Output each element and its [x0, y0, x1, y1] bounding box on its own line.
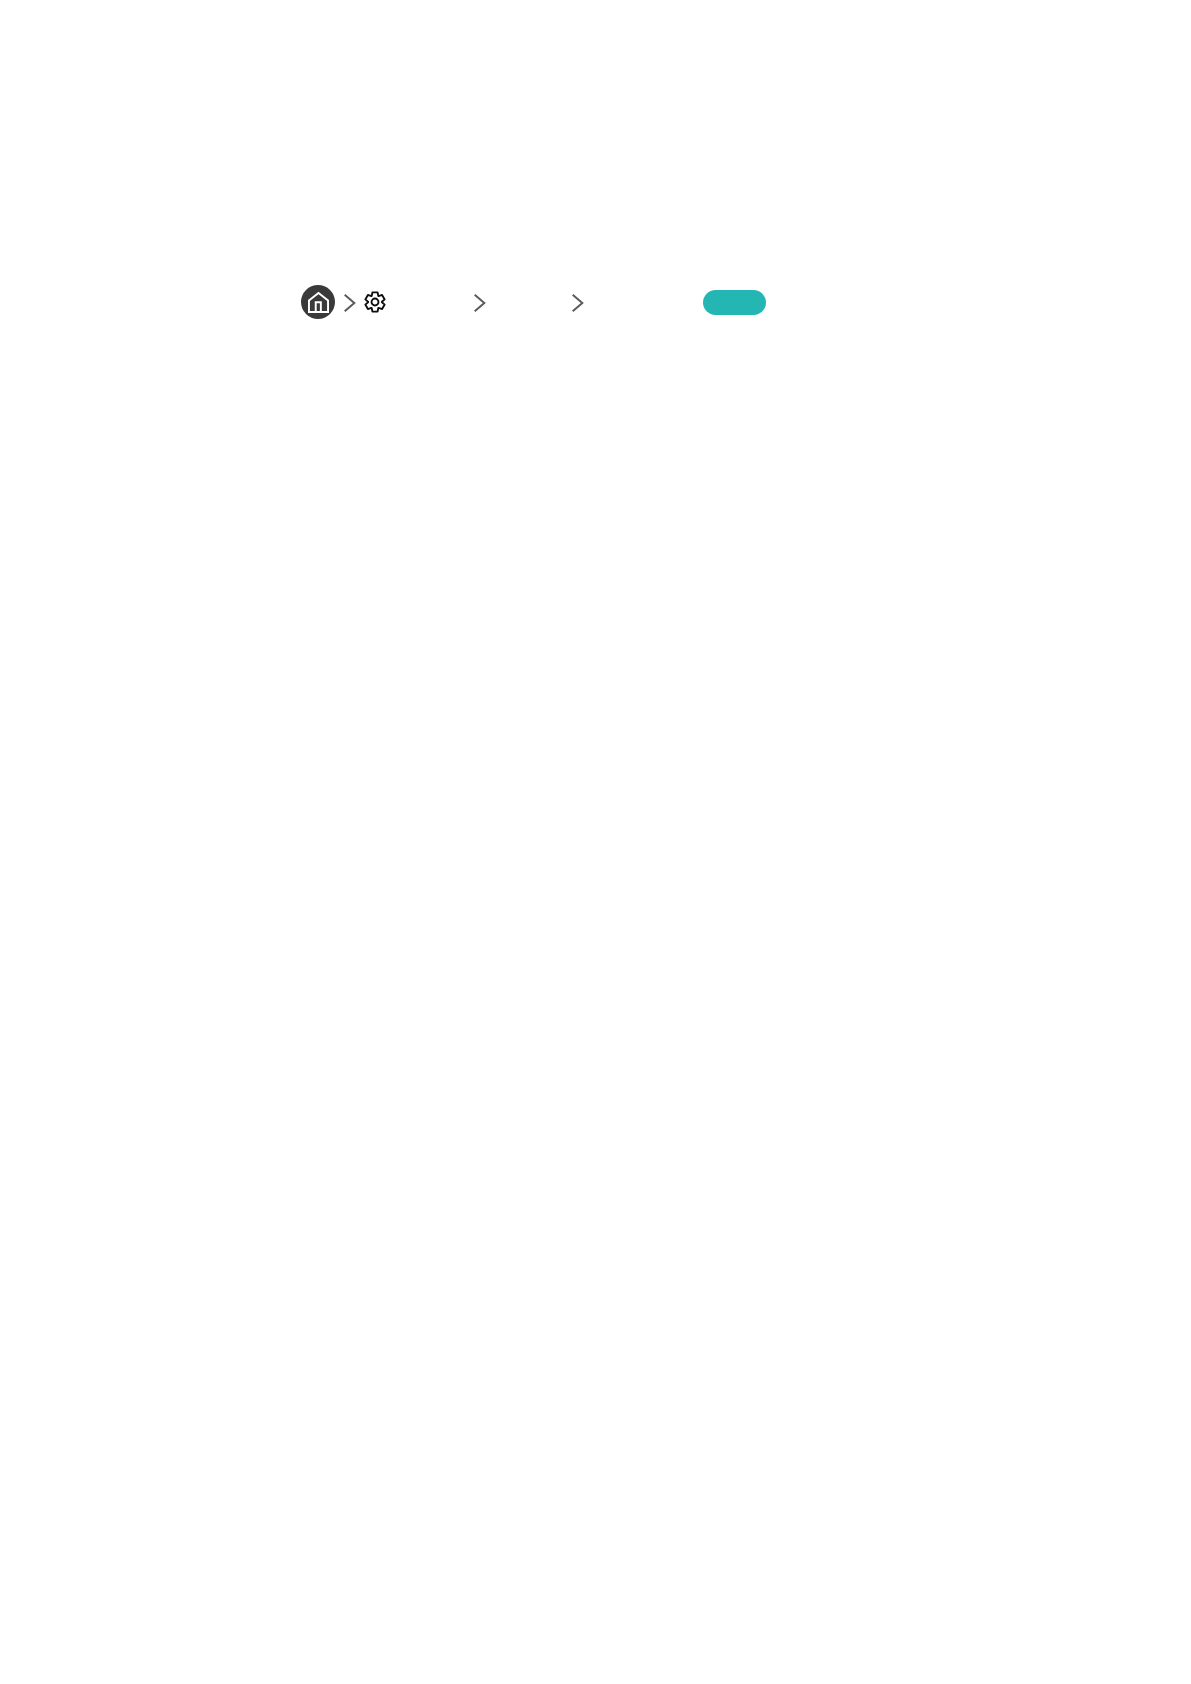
button[interactable]: Toggle switch	[703, 290, 766, 315]
button[interactable]: Home	[301, 285, 335, 319]
button[interactable]: Settings	[364, 291, 386, 313]
